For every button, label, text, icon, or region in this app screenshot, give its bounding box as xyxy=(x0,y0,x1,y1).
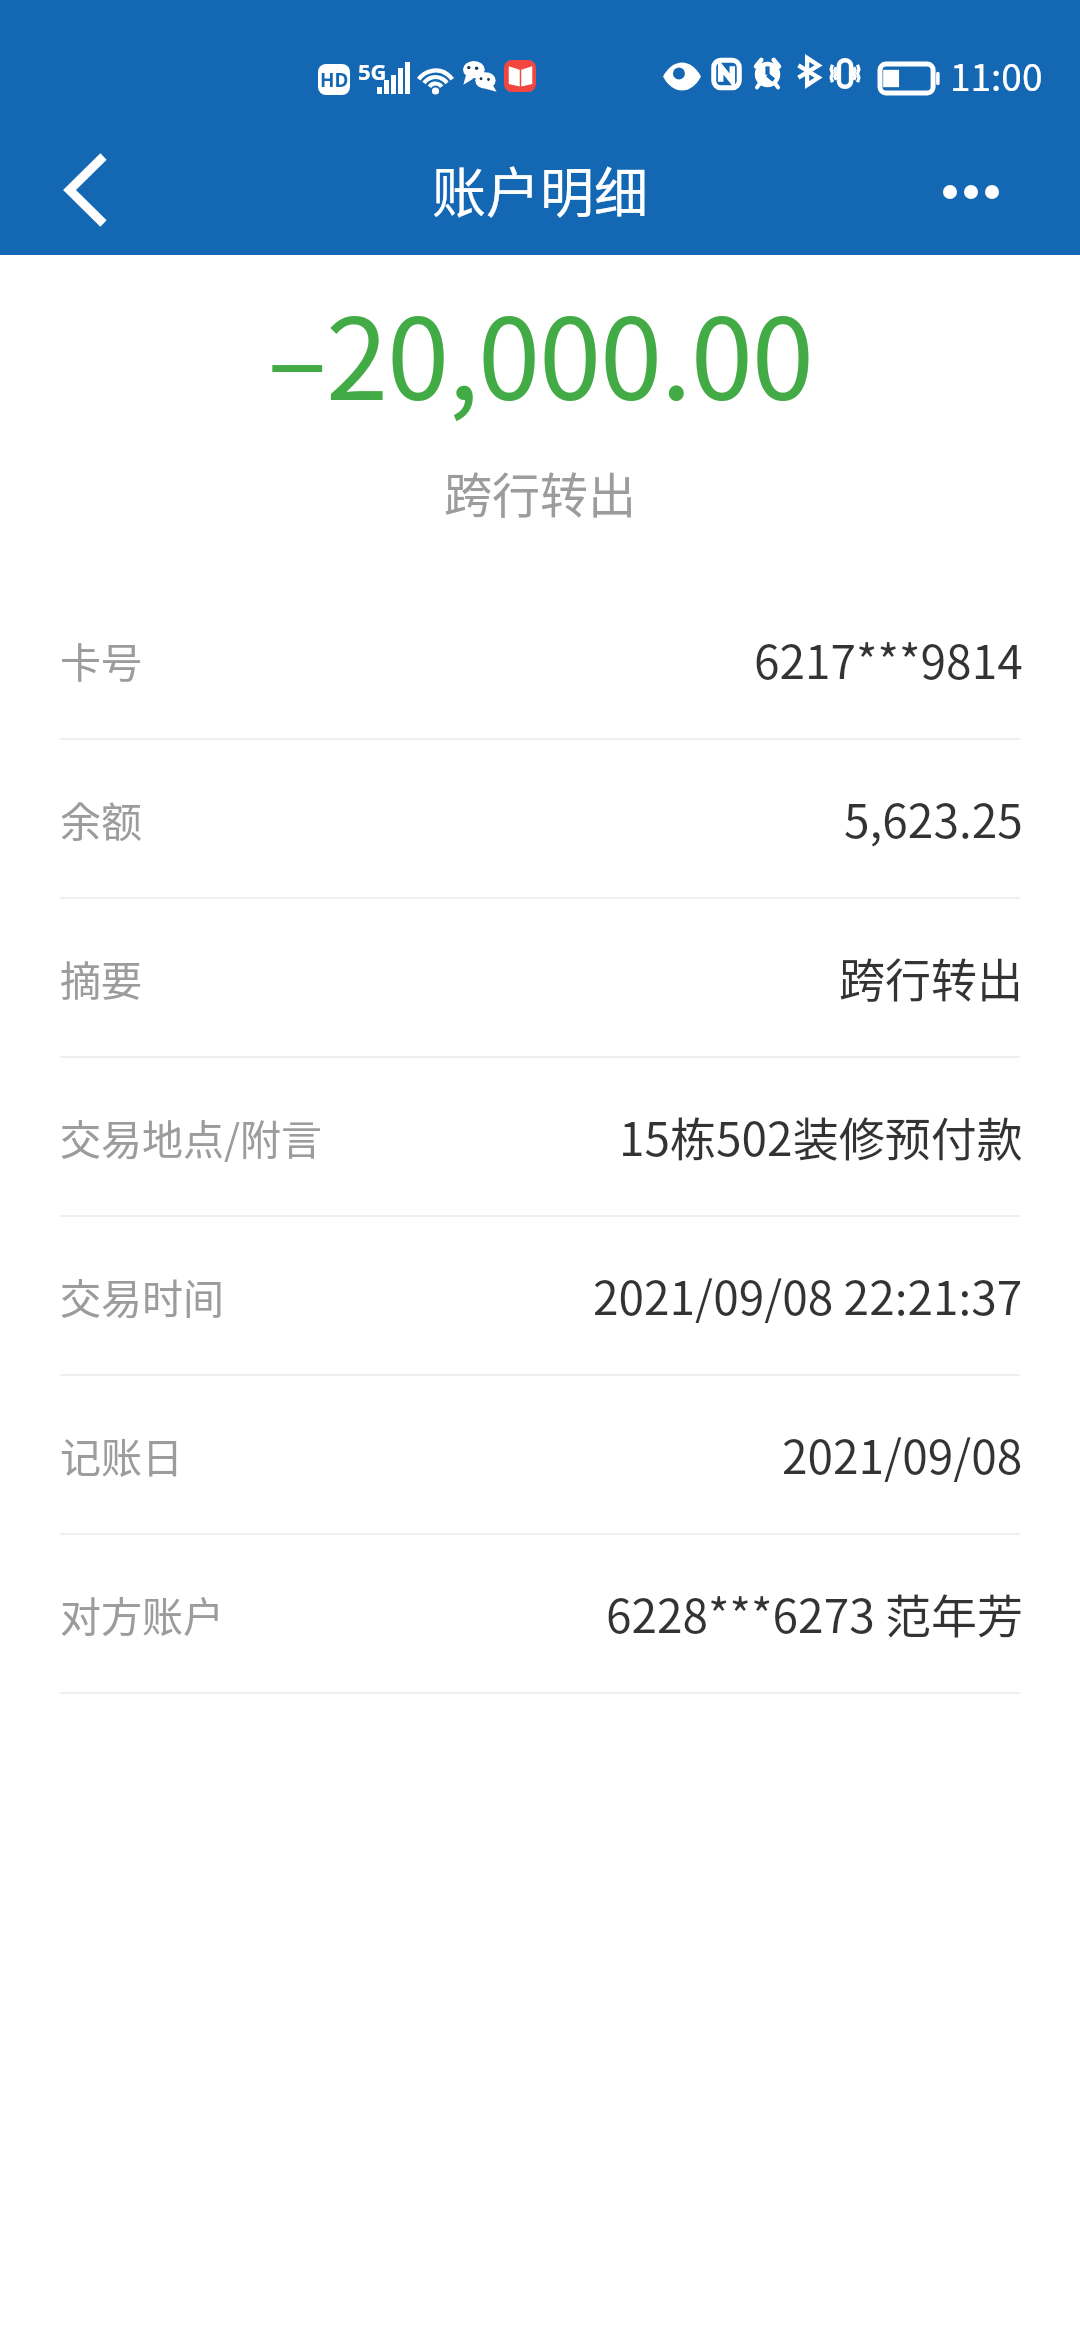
staticText: 交易地点/附言 xyxy=(60,1107,323,1166)
button[interactable]: 对方账户 xyxy=(0,1535,1080,1692)
button[interactable]: 卡号 xyxy=(0,581,1080,738)
staticText: 记账日 xyxy=(60,1425,183,1484)
staticText: 账户明细 xyxy=(432,150,648,228)
staticText: 对方账户 xyxy=(60,1584,224,1643)
button[interactable]: 摘要 xyxy=(0,899,1080,1056)
button[interactable]: 交易时间 xyxy=(0,1217,1080,1374)
staticText: 5G xyxy=(358,56,387,86)
staticText: 11:00 xyxy=(950,48,1043,102)
staticText: 余额 xyxy=(60,789,142,848)
staticText: 15栋502装修预付款 xyxy=(619,1103,1023,1170)
staticText: 跨行转出 xyxy=(0,457,1080,527)
staticText: 2021/09/08 xyxy=(782,1421,1023,1488)
staticText: 卡号 xyxy=(60,630,142,689)
staticText: HD xyxy=(320,67,349,93)
button[interactable]: Back xyxy=(26,130,146,250)
button[interactable]: 记账日 xyxy=(0,1376,1080,1533)
staticText: 6228***6273 范年芳 xyxy=(606,1580,1023,1647)
button[interactable]: 交易地点/附言 xyxy=(0,1058,1080,1215)
staticText: –20,000.00 xyxy=(0,270,1080,432)
button[interactable]: More options xyxy=(912,147,1030,237)
staticText: 2021/09/08 22:21:37 xyxy=(593,1262,1023,1329)
staticText: 摘要 xyxy=(60,948,142,1007)
button[interactable]: 余额 xyxy=(0,740,1080,897)
staticText: 5,623.25 xyxy=(844,785,1023,852)
staticText: 6217***9814 xyxy=(754,626,1023,693)
staticText: 交易时间 xyxy=(60,1266,224,1325)
staticText: 跨行转出 xyxy=(839,944,1023,1011)
